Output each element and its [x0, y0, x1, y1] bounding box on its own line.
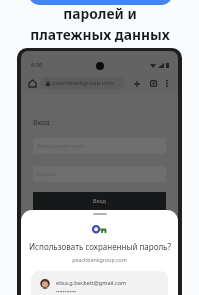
staticText: peachbankgroup.com [72, 256, 127, 263]
button[interactable]: More options [164, 78, 169, 89]
button[interactable]: Home [27, 78, 38, 89]
button[interactable]: Вход [33, 192, 166, 216]
staticText: платежных данных [30, 25, 170, 44]
staticText: паролей и [63, 4, 137, 23]
staticText: Электронная почта [37, 143, 84, 150]
button[interactable]: Tabs [148, 78, 159, 89]
staticText: Вход [33, 118, 50, 128]
staticText: 9:30 [31, 61, 43, 69]
button[interactable]: elisa.g.beckett@gmail.com [31, 271, 168, 295]
staticText: Пароль [37, 171, 56, 178]
staticText: elisa.g.beckett@gmail.com [56, 279, 127, 287]
button[interactable] [29, 0, 172, 5]
staticText: Вход [93, 197, 106, 204]
staticText: Использовать сохраненный пароль? [29, 241, 171, 252]
staticText: peachbankgroup.com [52, 79, 114, 87]
button[interactable]: peachbankgroup.com [40, 77, 125, 89]
button[interactable]: New tab [131, 78, 142, 89]
staticText: •••••••••••• [56, 289, 77, 295]
